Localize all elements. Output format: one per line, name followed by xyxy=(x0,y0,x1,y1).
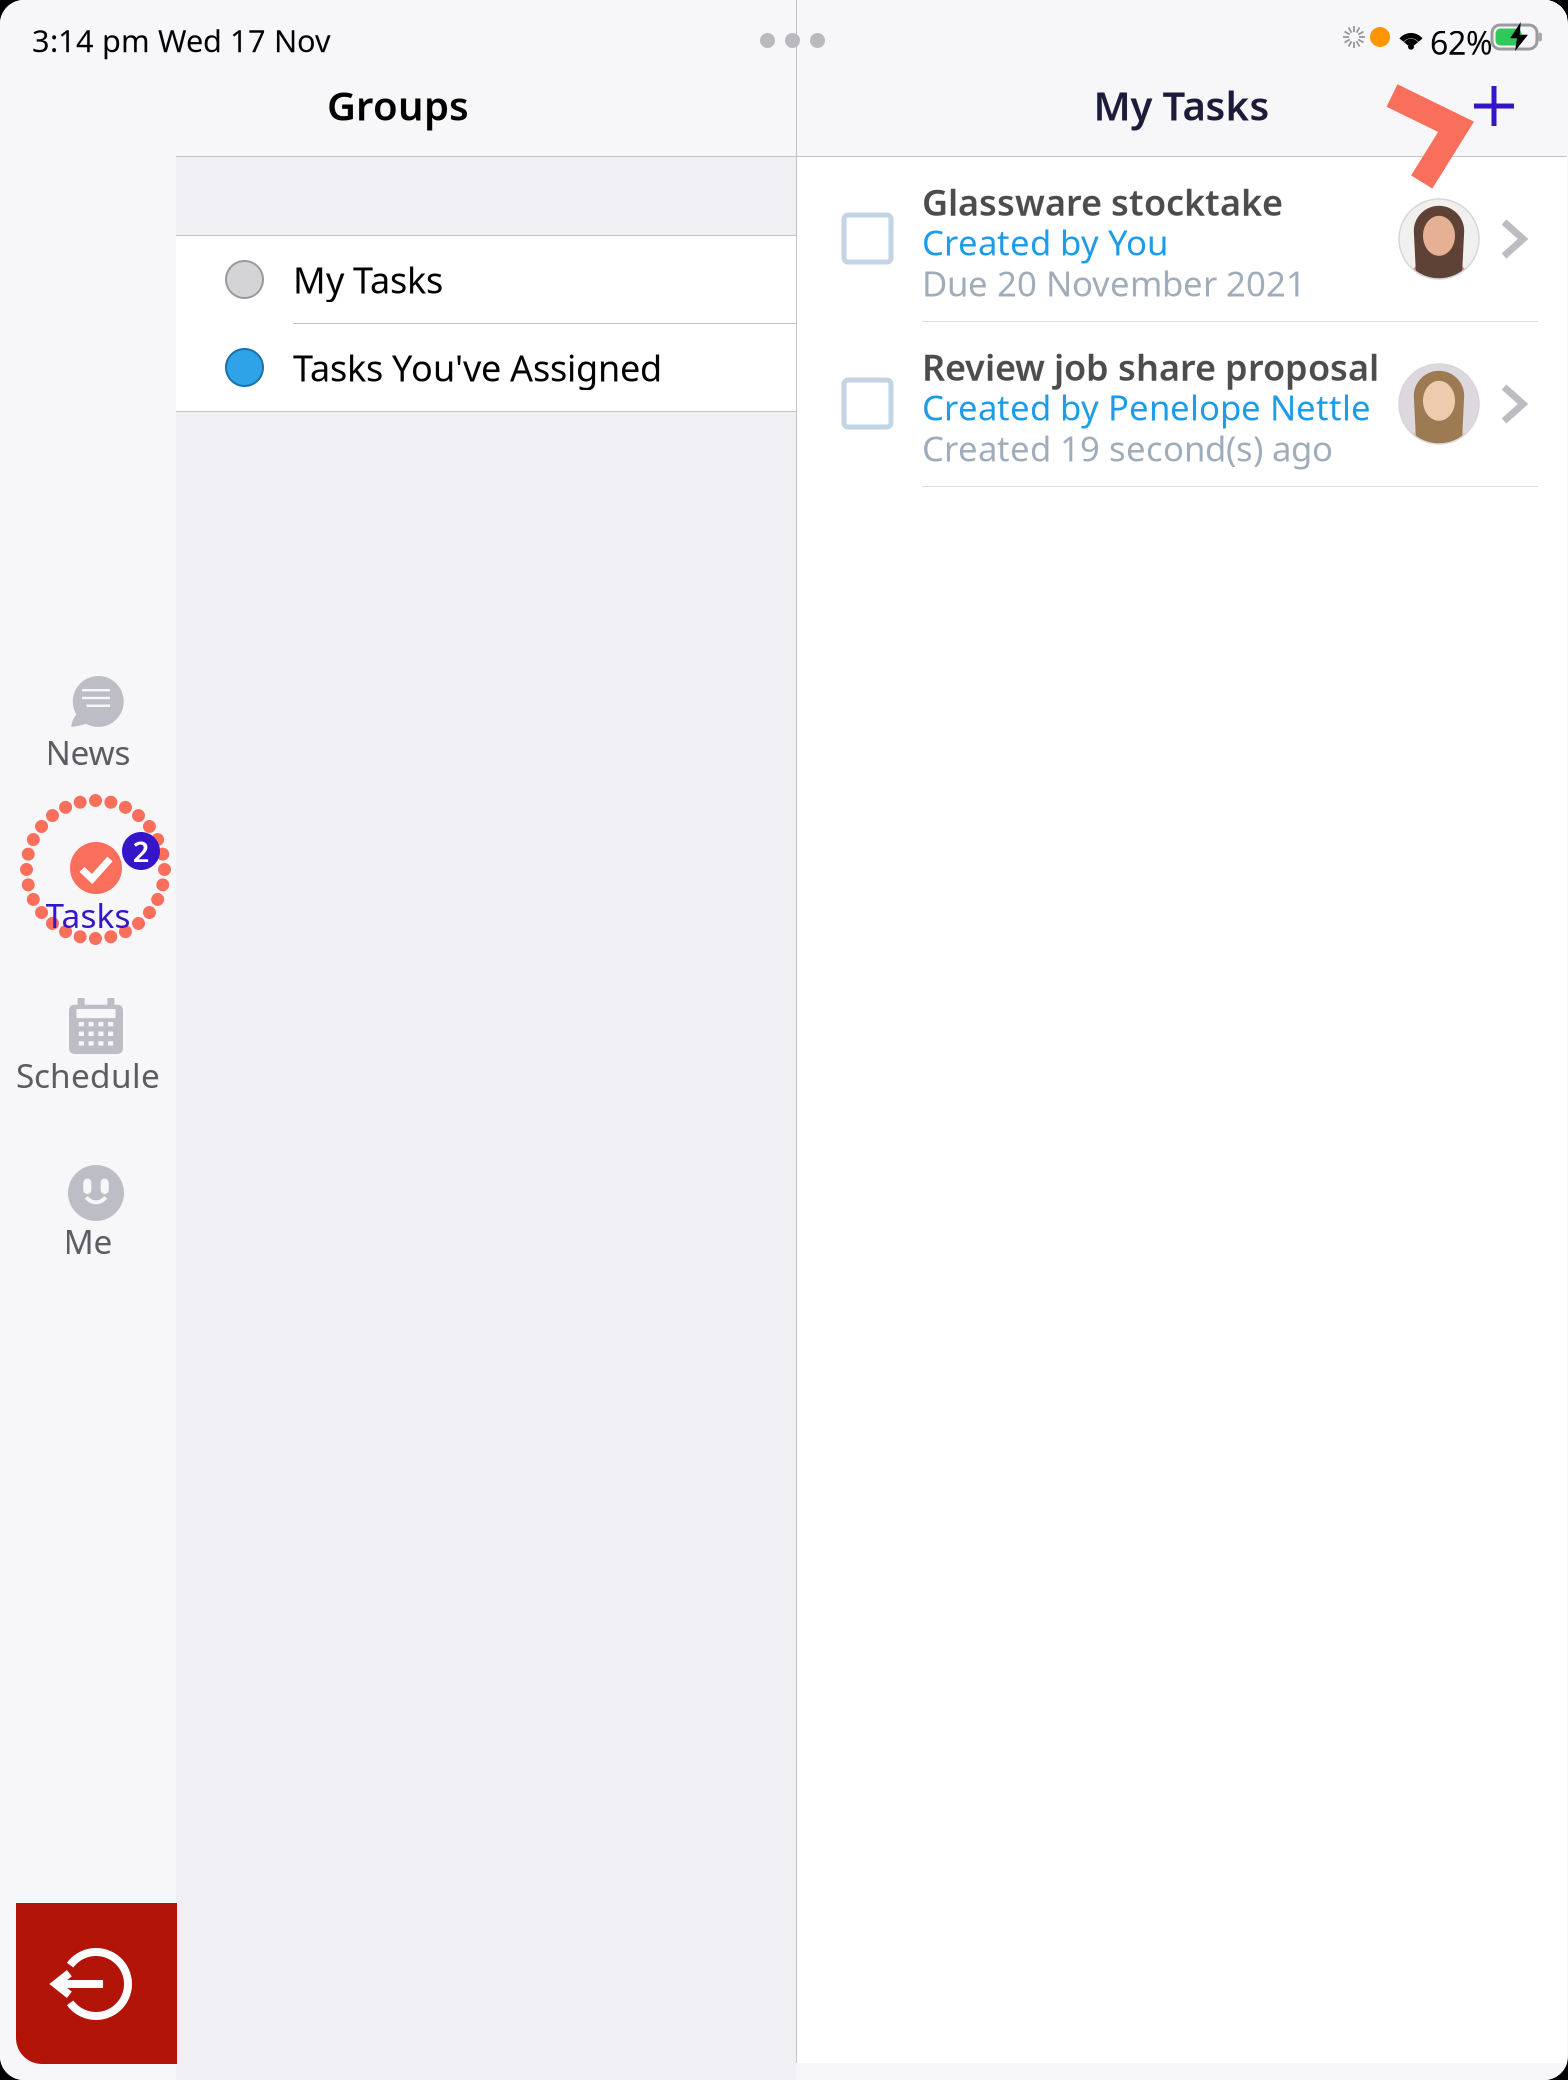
staticText: Tasks You've Assigned xyxy=(293,344,662,391)
staticText: Wed 17 Nov xyxy=(158,20,331,61)
button[interactable]: Me xyxy=(0,0,176,130)
staticText: 62% xyxy=(1430,21,1493,63)
button[interactable]: Log out xyxy=(16,1903,177,2064)
button[interactable]: Tasks You've Assigned xyxy=(176,324,796,411)
staticText: Due 20 November 2021 xyxy=(922,260,1306,306)
staticText: Me xyxy=(63,1219,112,1263)
staticText: Schedule xyxy=(16,1053,160,1097)
staticText: Review job share proposal xyxy=(922,343,1379,391)
button[interactable]: Glassware stocktake xyxy=(796,157,1567,322)
staticText: News xyxy=(45,730,130,774)
button[interactable]: My Tasks xyxy=(176,236,796,324)
button[interactable]: Add task xyxy=(1450,62,1538,150)
staticText: Created by You xyxy=(922,219,1168,265)
button[interactable]: 2 xyxy=(0,0,176,175)
staticText: 3:14 pm xyxy=(32,20,150,61)
staticText: My Tasks xyxy=(1093,78,1269,131)
staticText: 2 xyxy=(132,831,149,870)
button[interactable]: News xyxy=(0,0,176,130)
button[interactable]: Schedule xyxy=(0,0,176,130)
staticText: My Tasks xyxy=(293,256,443,303)
staticText: Created 19 second(s) ago xyxy=(922,425,1333,471)
staticText: Created by Penelope Nettle xyxy=(922,384,1371,430)
button[interactable]: Review job share proposal xyxy=(796,322,1567,487)
staticText: Groups xyxy=(327,78,469,131)
staticText: Tasks xyxy=(45,893,130,937)
staticText: Glassware stocktake xyxy=(922,178,1283,226)
